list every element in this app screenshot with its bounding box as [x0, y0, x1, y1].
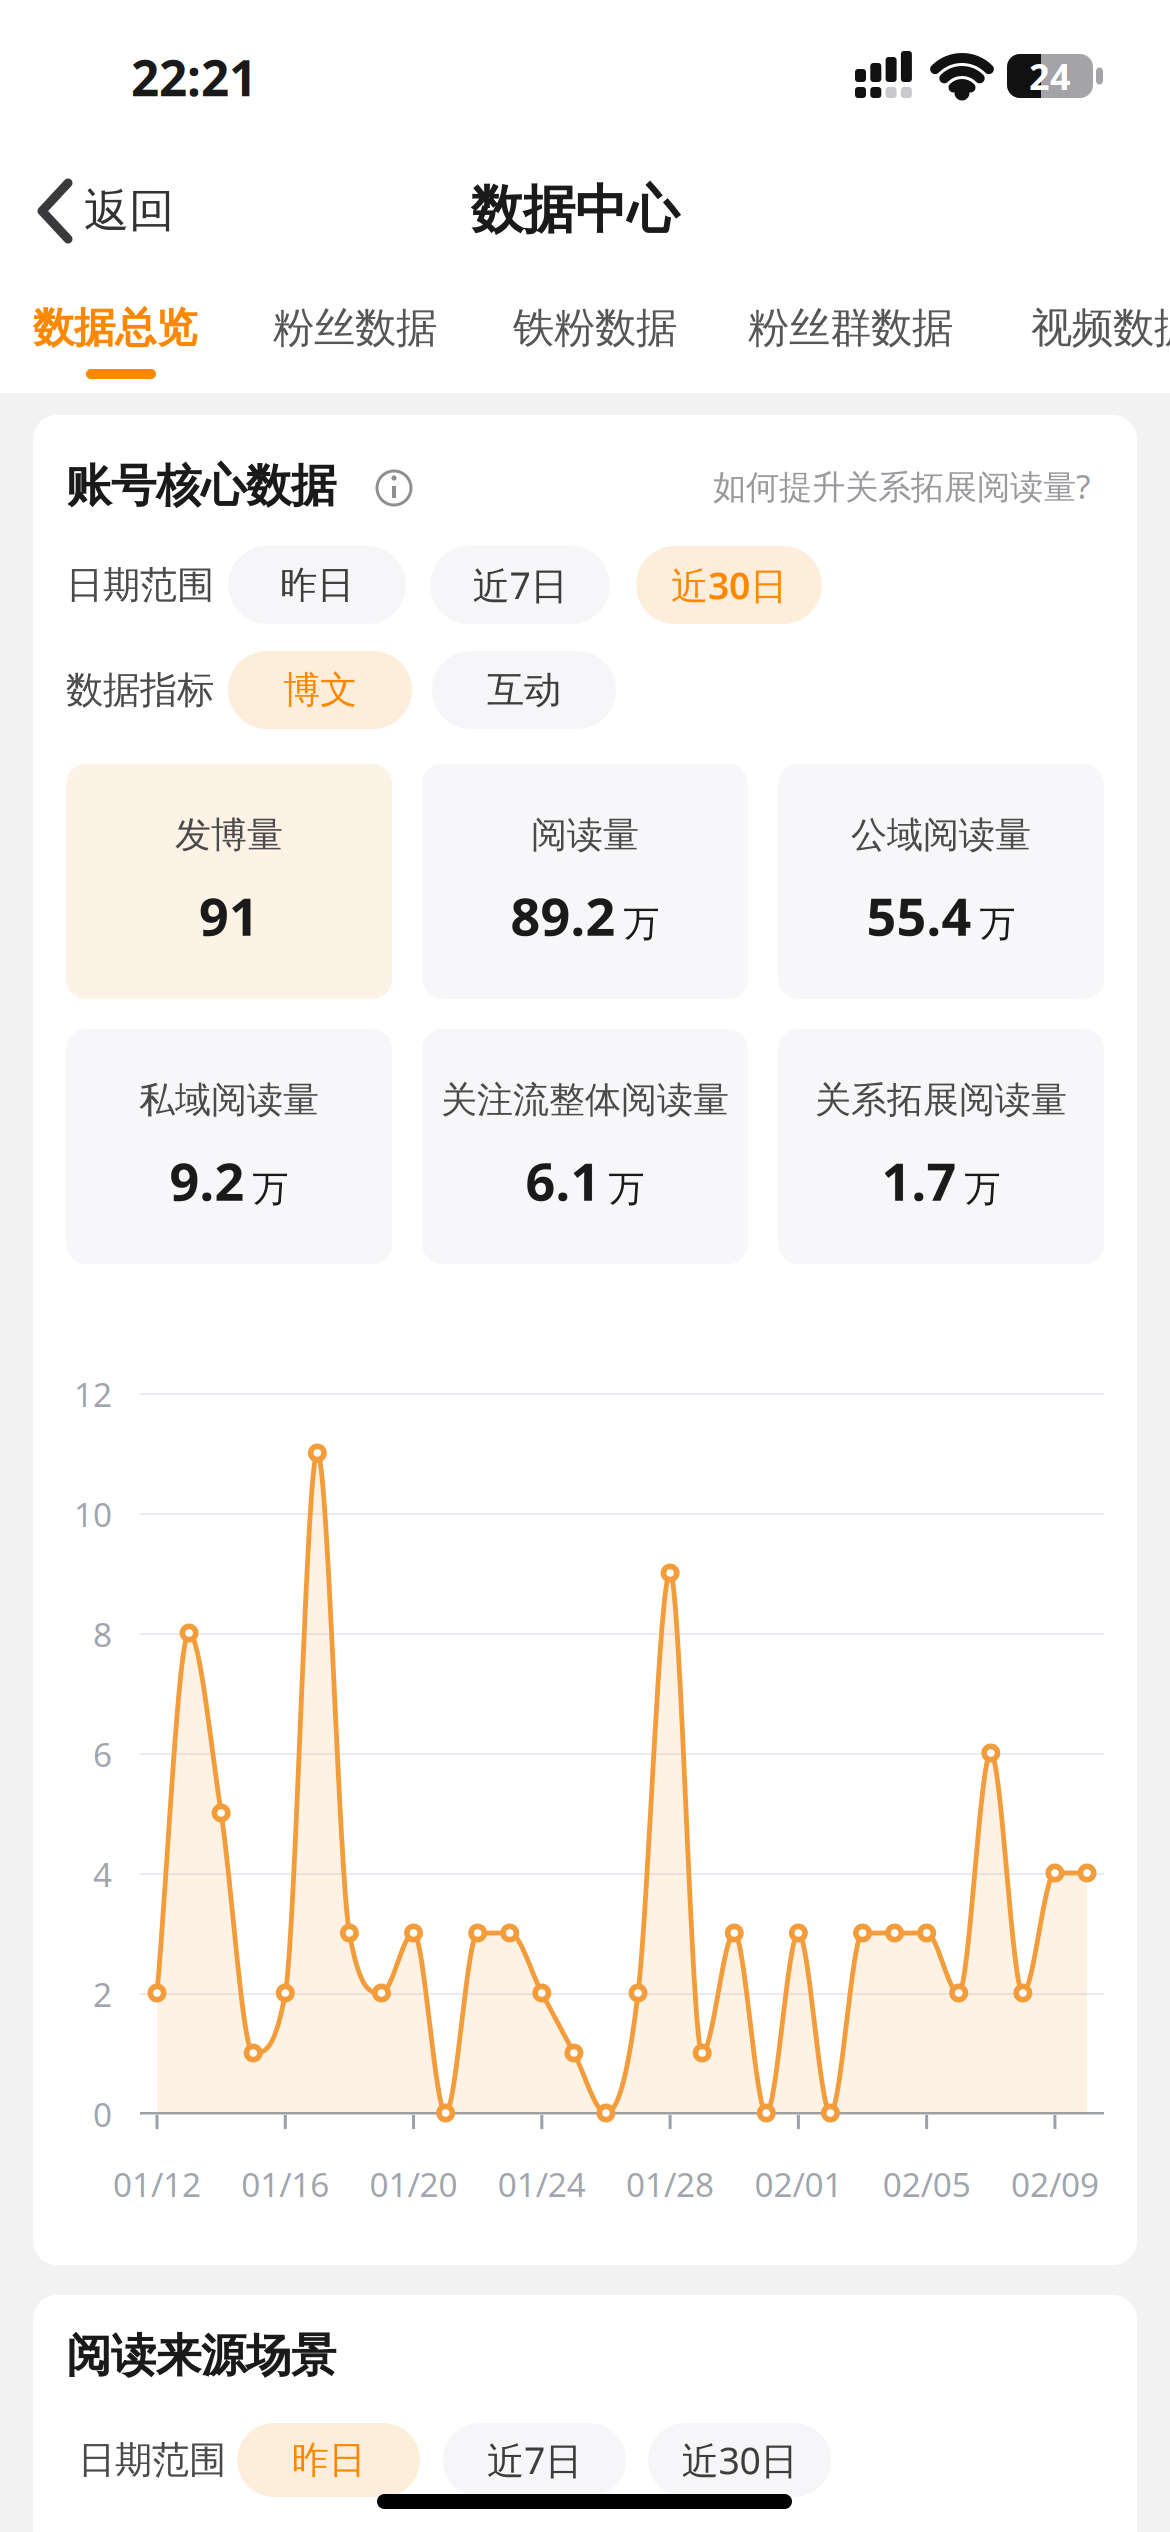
staticText: 2 [93, 1972, 112, 2016]
button[interactable]: 粉丝群数据 [748, 298, 969, 358]
staticText: 互动 [487, 667, 561, 713]
staticText: 01/16 [241, 2162, 329, 2206]
staticText: 关注流整体阅读量 [441, 1078, 729, 1122]
staticText: 01/12 [113, 2162, 201, 2206]
staticText: 博文 [283, 667, 357, 713]
staticText: 粉丝数据 [273, 303, 437, 353]
staticText: 6 [93, 1732, 112, 1776]
staticText: 粉丝群数据 [748, 303, 953, 353]
staticText: 近7日 [472, 560, 567, 610]
button[interactable]: 互动 [432, 651, 616, 729]
staticText: 0 [93, 2092, 112, 2136]
button[interactable]: 近30日 [636, 546, 822, 624]
button[interactable]: 近7日 [443, 2423, 626, 2497]
staticText: 近30日 [671, 560, 787, 610]
button[interactable]: 关系拓展阅读量 [778, 1029, 1104, 1264]
staticText: 数据中心 [471, 178, 679, 242]
staticText: 89.2 [510, 881, 615, 950]
staticText: 昨日 [291, 2437, 365, 2483]
staticText: 近30日 [681, 2435, 797, 2485]
staticText: 关系拓展阅读量 [815, 1078, 1067, 1122]
staticText: 8 [93, 1612, 112, 1656]
staticText: 02/09 [1011, 2162, 1099, 2206]
button[interactable]: 粉丝数据 [273, 298, 451, 358]
staticText: 02/05 [883, 2162, 971, 2206]
staticText: 万 [608, 1167, 644, 1211]
staticText: 02/01 [754, 2162, 842, 2206]
staticText: 12 [74, 1372, 112, 1416]
staticText: 万 [979, 902, 1015, 946]
button[interactable]: 博文 [228, 651, 412, 729]
staticText: 铁粉数据 [513, 303, 677, 353]
staticText: 01/28 [626, 2162, 714, 2206]
staticText: 日期范围 [78, 2437, 226, 2483]
staticText: 55.4 [866, 881, 971, 950]
staticText: 4 [93, 1852, 112, 1896]
staticText: 近7日 [487, 2435, 582, 2485]
staticText: 9.2 [169, 1146, 244, 1215]
button[interactable]: 发博量 [66, 764, 392, 999]
button[interactable]: 昨日 [228, 546, 406, 624]
button[interactable]: 返回 [36, 178, 196, 244]
button[interactable]: 近7日 [430, 546, 610, 624]
staticText: 日期范围 [66, 562, 214, 608]
staticText: 01/20 [370, 2162, 458, 2206]
staticText: 24 [1029, 52, 1071, 100]
staticText: 昨日 [280, 562, 354, 608]
button[interactable]: 私域阅读量 [66, 1029, 392, 1264]
staticText: 视频数据 [1031, 303, 1170, 353]
staticText: 万 [623, 902, 659, 946]
button[interactable]: 数据总览 [33, 298, 211, 358]
button[interactable]: 阅读量 [422, 764, 748, 999]
staticText: 账号核心数据 [66, 458, 336, 514]
staticText: 1.7 [881, 1146, 956, 1215]
staticText: 返回 [84, 183, 174, 239]
staticText: 阅读来源场景 [66, 2328, 336, 2384]
button[interactable]: 视频数据 [1031, 298, 1170, 358]
button[interactable]: 如何提升关系拓展阅读量? [570, 456, 1090, 516]
staticText: 私域阅读量 [139, 1078, 319, 1122]
button[interactable]: 公域阅读量 [778, 764, 1104, 999]
staticText: 发博量 [175, 813, 283, 857]
staticText: 01/24 [498, 2162, 586, 2206]
button[interactable]: 近30日 [648, 2423, 831, 2497]
staticText: 阅读量 [531, 813, 639, 857]
staticText: 公域阅读量 [851, 813, 1031, 857]
staticText: 万 [252, 1167, 288, 1211]
staticText: 6.1 [525, 1146, 600, 1215]
staticText: 数据指标 [66, 667, 214, 713]
staticText: 22:21 [131, 44, 257, 110]
staticText: 万 [964, 1167, 1000, 1211]
button[interactable]: 昨日 [237, 2423, 420, 2497]
staticText: 如何提升关系拓展阅读量? [713, 464, 1090, 508]
button[interactable]: 关注流整体阅读量 [422, 1029, 748, 1264]
staticText: 10 [74, 1492, 112, 1536]
staticText: 数据总览 [33, 303, 197, 353]
staticText: 91 [199, 881, 259, 950]
button[interactable]: 铁粉数据 [513, 298, 691, 358]
